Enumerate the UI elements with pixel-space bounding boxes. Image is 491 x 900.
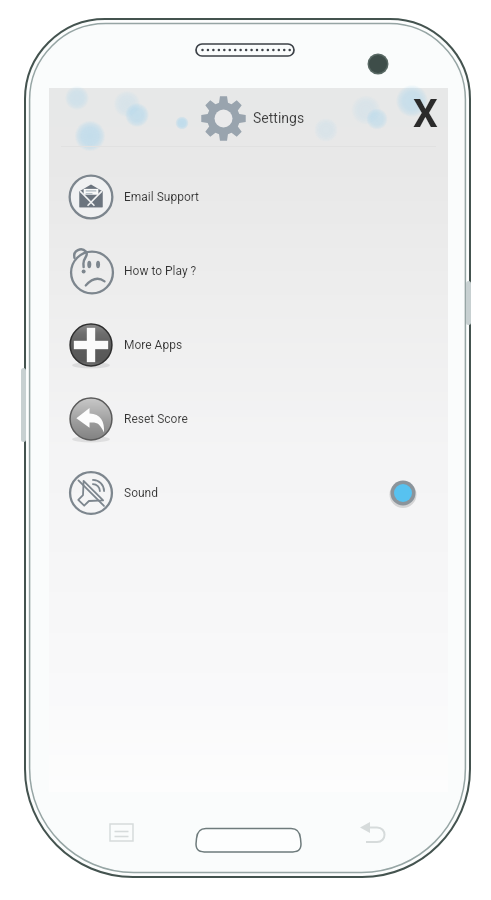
button[interactable]: Email Support xyxy=(49,160,448,234)
button[interactable]: Toggle sound xyxy=(387,477,419,509)
button[interactable]: Reset Score xyxy=(49,382,448,456)
staticText: X xyxy=(413,91,438,133)
button[interactable]: How to Play ? xyxy=(49,234,448,308)
staticText: Settings xyxy=(253,110,305,126)
staticText: Email Support xyxy=(124,190,200,204)
staticText: How to Play ? xyxy=(124,264,197,278)
button[interactable]: More Apps xyxy=(49,308,448,382)
staticText: Sound xyxy=(124,486,158,500)
staticText: Reset Score xyxy=(124,412,188,426)
button[interactable]: Sound xyxy=(49,456,448,530)
staticText: More Apps xyxy=(124,338,183,352)
button[interactable]: Close xyxy=(404,91,446,133)
